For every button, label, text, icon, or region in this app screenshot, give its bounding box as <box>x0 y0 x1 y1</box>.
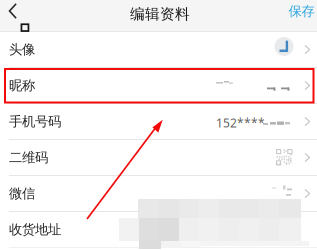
staticText: 微信 <box>9 185 35 202</box>
staticText: 头像 <box>9 41 35 58</box>
staticText: 编辑资料 <box>130 5 190 23</box>
button[interactable]: 二维码 <box>0 140 317 176</box>
button[interactable]: 手机号码 <box>0 104 317 140</box>
button[interactable]: 昵称 <box>0 68 317 104</box>
button[interactable]: 头像 <box>0 32 317 68</box>
staticText: 手机号码 <box>9 113 61 130</box>
staticText: 收货地址 <box>9 221 61 238</box>
staticText: 昵称 <box>9 77 35 94</box>
staticText: 保存 <box>288 3 314 20</box>
button[interactable]: 微信 <box>0 176 317 212</box>
button[interactable]: Back <box>0 0 23 25</box>
button[interactable]: 收货地址 <box>0 212 317 248</box>
button[interactable]: 保存 <box>280 0 317 26</box>
staticText: 二维码 <box>9 149 48 166</box>
staticText: 152**** <box>216 115 265 131</box>
